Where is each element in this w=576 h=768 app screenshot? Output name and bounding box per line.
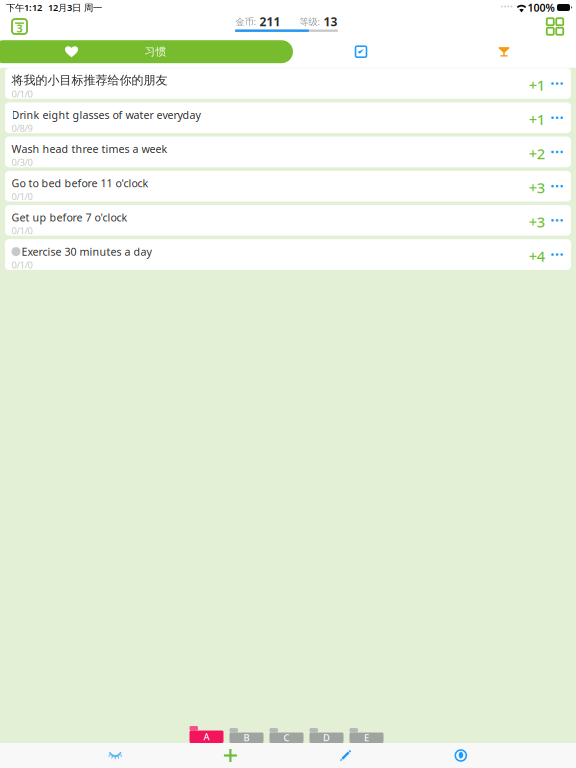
staticText: 100% xyxy=(527,0,554,15)
button[interactable]: 将我的小目标推荐给你的朋友 xyxy=(5,68,571,99)
button[interactable]: Go to bed before 11 o'clock xyxy=(5,171,571,201)
button[interactable]: Night mode xyxy=(403,743,518,768)
staticText: E xyxy=(364,732,369,744)
button[interactable]: Get up before 7 o'clock xyxy=(5,205,571,236)
staticText: 211 xyxy=(259,13,280,29)
staticText: A xyxy=(203,731,209,743)
staticText: D xyxy=(323,732,330,744)
button[interactable]: A xyxy=(189,726,223,743)
staticText: 13 xyxy=(323,13,337,29)
button[interactable]: Hide completed xyxy=(58,743,173,768)
button[interactable]: Grid view xyxy=(546,17,564,35)
button[interactable]: Wash head three times a week xyxy=(5,137,571,167)
staticText: 金币: xyxy=(235,15,256,28)
staticText: +2 xyxy=(529,144,545,163)
staticText: Wash head three times a week xyxy=(11,142,167,156)
button[interactable]: D xyxy=(309,726,343,743)
button[interactable]: Drink eight glasses of water everyday xyxy=(5,102,571,133)
button[interactable]: Exercise 30 minutes a day xyxy=(5,239,571,270)
staticText: B xyxy=(243,732,249,744)
staticText: Go to bed before 11 o'clock xyxy=(11,176,148,190)
staticText: 12月3日 周一 xyxy=(48,1,102,14)
button[interactable]: C xyxy=(269,726,303,743)
staticText: +1 xyxy=(529,75,545,95)
staticText: 0/1/0 xyxy=(11,224,32,237)
staticText: Exercise 30 minutes a day xyxy=(21,244,151,259)
staticText: Drink eight glasses of water everyday xyxy=(11,108,200,122)
staticText: +1 xyxy=(529,109,545,129)
button[interactable]: Add habit xyxy=(173,743,288,768)
staticText: Get up before 7 o'clock xyxy=(11,210,127,224)
staticText: +4 xyxy=(529,246,545,266)
staticText: 等级: xyxy=(299,15,320,28)
button[interactable]: 习惯 xyxy=(0,40,293,63)
button[interactable]: E xyxy=(349,726,383,743)
staticText: 0/8/9 xyxy=(11,122,32,134)
staticText: 0/1/0 xyxy=(11,190,32,203)
button[interactable]: Calendar xyxy=(12,19,27,34)
staticText: 0/1/0 xyxy=(11,88,32,100)
button[interactable]: Rewards xyxy=(477,40,531,63)
staticText: 3 xyxy=(16,21,22,35)
staticText: 0/1/0 xyxy=(11,259,32,271)
button[interactable]: Tasks xyxy=(334,40,388,63)
staticText: 习惯 xyxy=(144,45,166,58)
button[interactable]: B xyxy=(229,726,263,743)
staticText: +3 xyxy=(529,178,545,197)
button[interactable]: Edit xyxy=(288,743,403,768)
staticText: 0/3/0 xyxy=(11,156,32,168)
staticText: 下午1:12 xyxy=(6,1,42,14)
staticText: +3 xyxy=(529,212,545,232)
staticText: C xyxy=(283,732,289,744)
staticText: 将我的小目标推荐给你的朋友 xyxy=(11,73,167,88)
